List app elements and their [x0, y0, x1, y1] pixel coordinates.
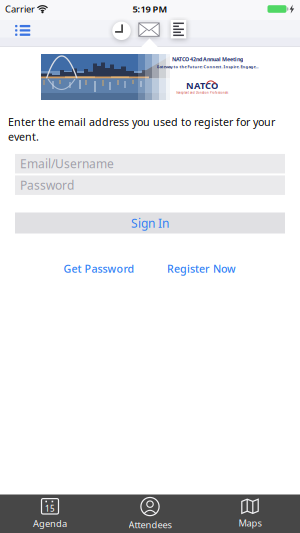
- button[interactable]: Password: [15, 175, 285, 195]
- button[interactable]: Attendees: [100, 494, 200, 533]
- button[interactable]: Get Password: [63, 261, 134, 276]
- staticText: Password: [20, 177, 74, 193]
- staticText: Enter the email address you used to regi…: [8, 115, 275, 129]
- button[interactable]: Register Now: [167, 261, 236, 276]
- button[interactable]: Sign In: [15, 212, 285, 233]
- button[interactable]: [135, 19, 163, 41]
- staticText: Sign In: [131, 215, 169, 231]
- staticText: 5:19 PM: [132, 3, 167, 15]
- staticText: NATCO 42nd Annual Meeting: [172, 56, 243, 63]
- staticText: Transplant and Donation Professionals: [176, 91, 228, 94]
- button[interactable]: 15: [0, 494, 100, 533]
- staticText: Agenda: [33, 517, 67, 530]
- staticText: Register Now: [167, 261, 236, 276]
- button[interactable]: [166, 16, 190, 42]
- staticText: Gateway to the Future: Connect. Inspire.…: [156, 64, 258, 69]
- staticText: Email/Username: [20, 156, 114, 172]
- button[interactable]: Email/Username: [15, 154, 285, 173]
- staticText: Get Password: [63, 261, 134, 276]
- staticText: Maps: [238, 517, 261, 529]
- staticText: NATCO: [186, 79, 218, 92]
- button[interactable]: [108, 18, 134, 44]
- button[interactable]: Maps: [200, 494, 300, 533]
- staticText: event.: [8, 129, 39, 144]
- staticText: Attendees: [128, 519, 171, 531]
- staticText: 15: [45, 503, 55, 514]
- button[interactable]: [15, 25, 30, 36]
- staticText: Carrier: [5, 3, 35, 15]
